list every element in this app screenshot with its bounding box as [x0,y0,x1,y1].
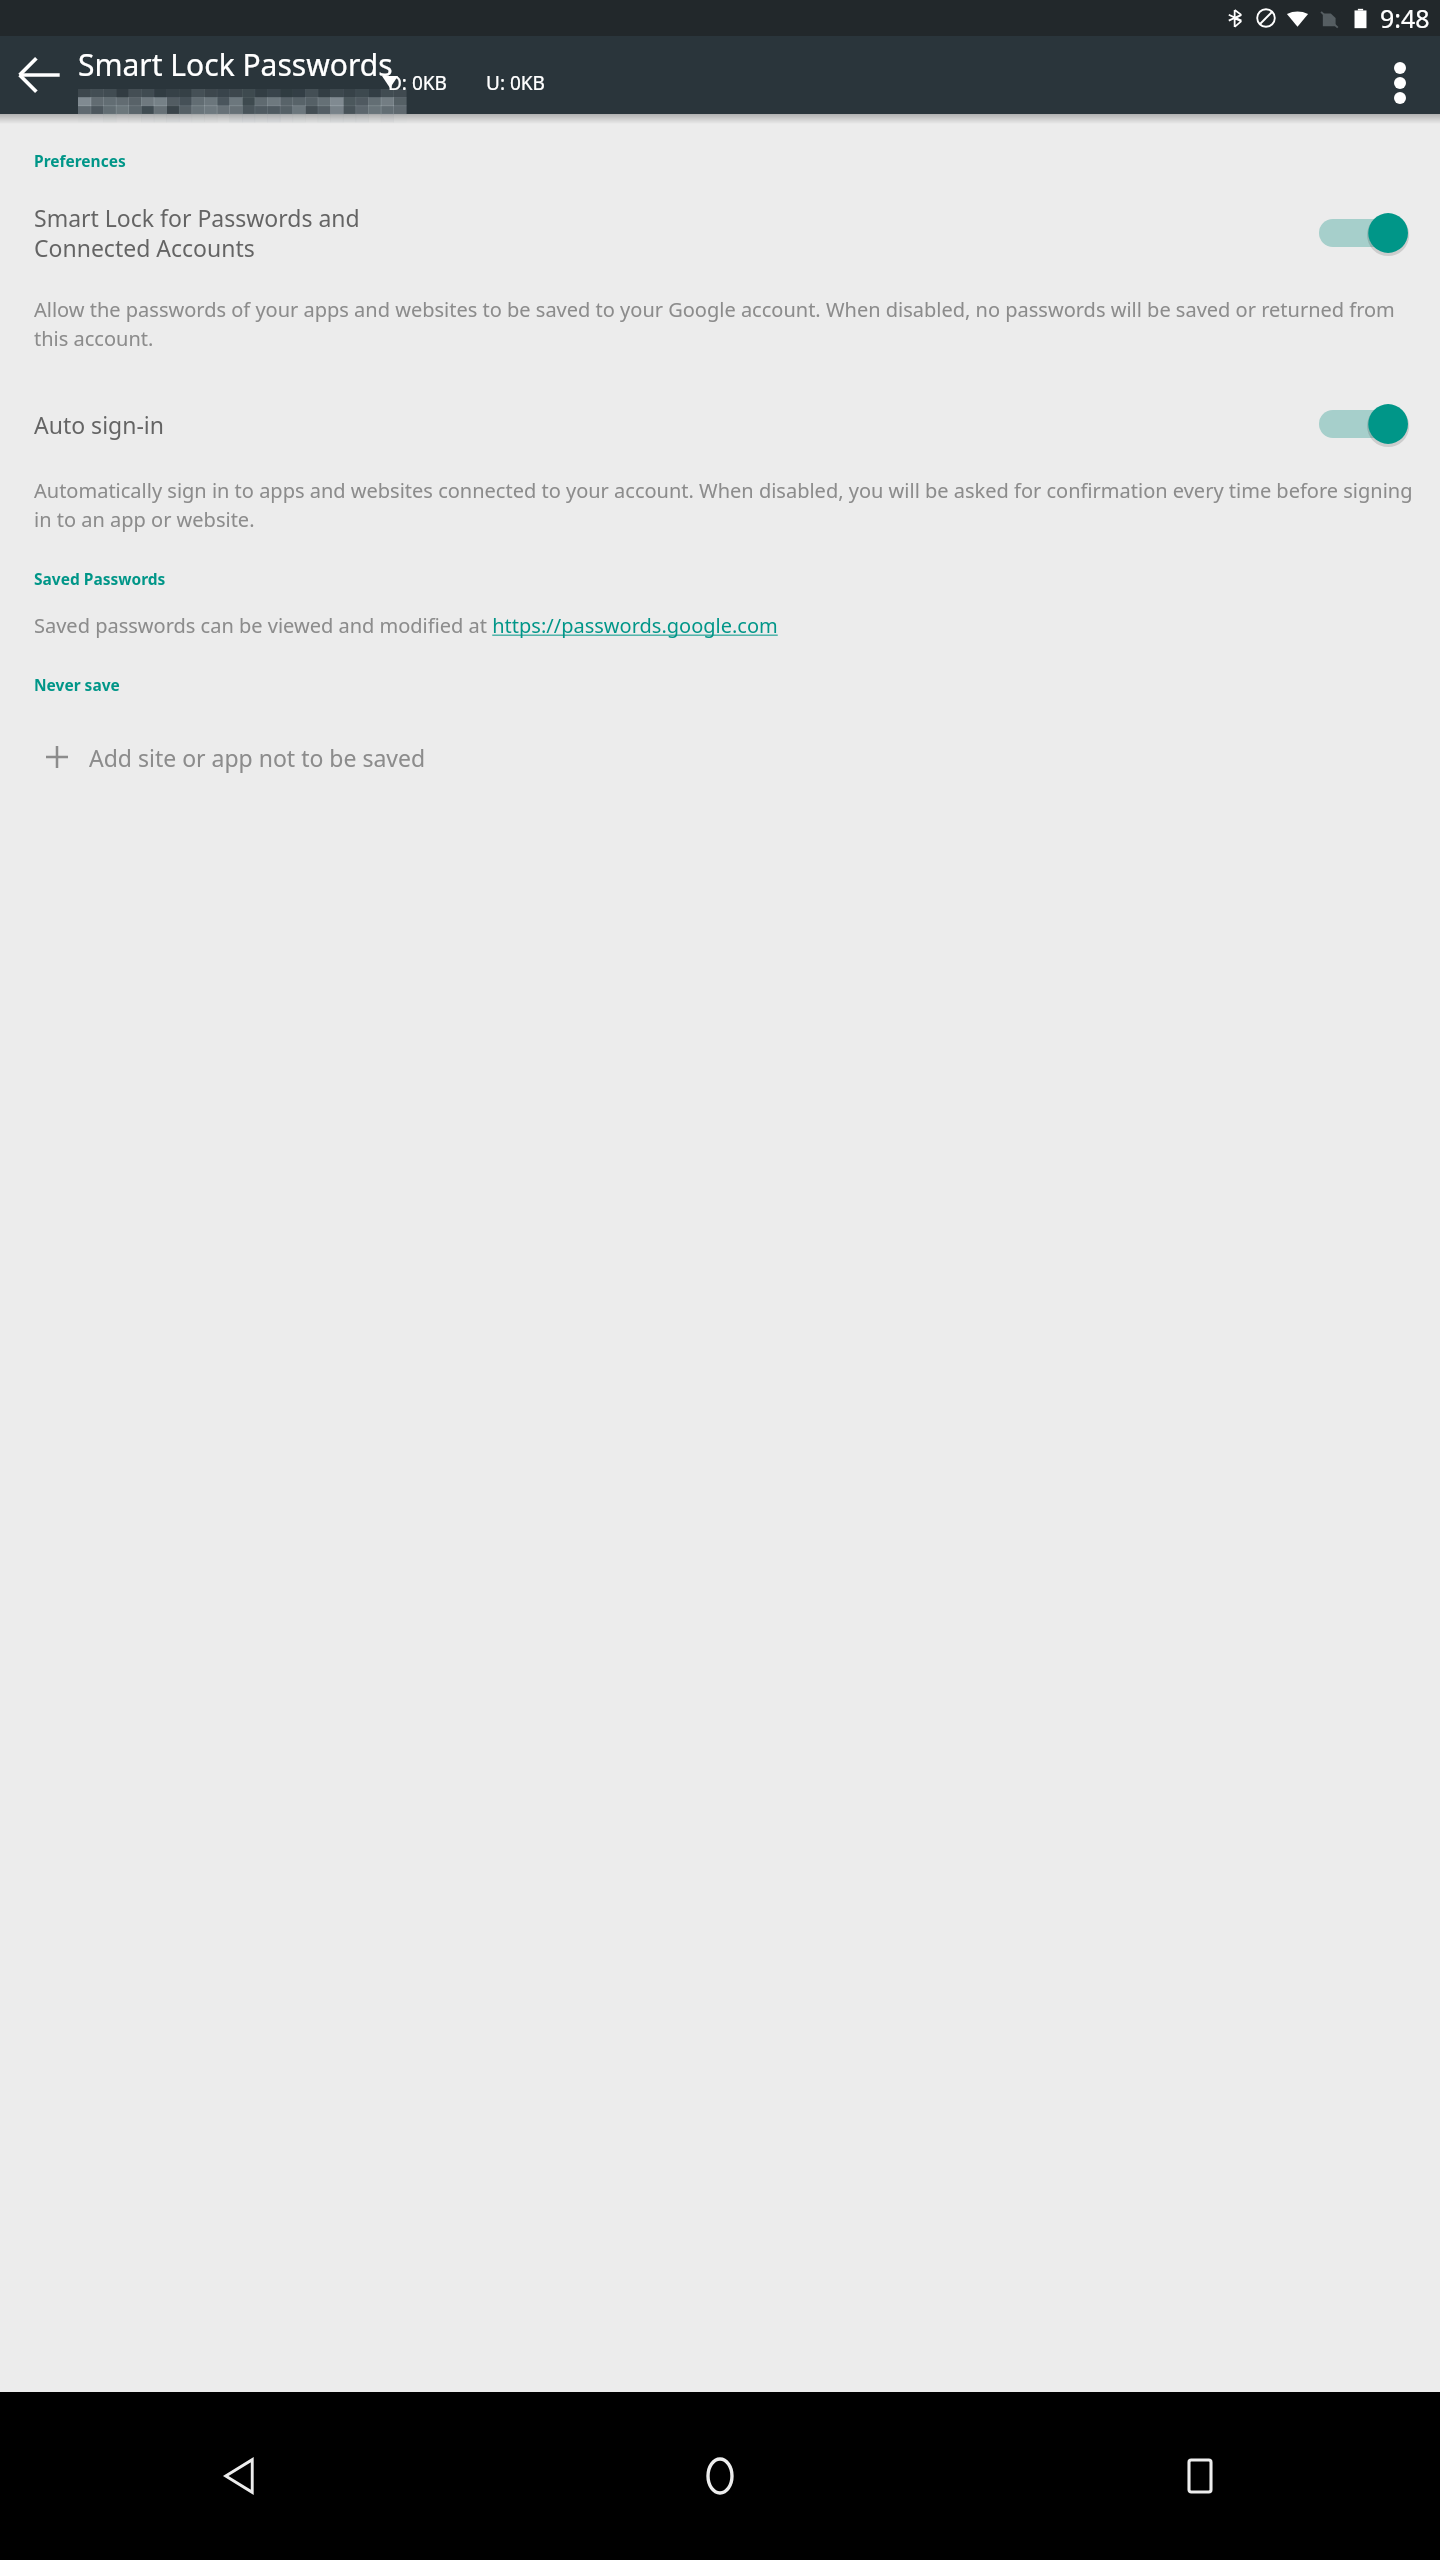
staticText: Add site or app not to be saved [89,742,426,773]
staticText: Automatically sign in to apps and websit… [34,477,1415,533]
staticText: U: 0KB [486,70,545,96]
button[interactable] [1319,205,1415,261]
button[interactable] [1319,396,1415,452]
button[interactable]: Home [480,2392,960,2560]
button[interactable]: Recent apps [960,2392,1440,2560]
button[interactable]: Add site or app not to be saved [0,723,1440,791]
staticText: Smart Lock for Passwords and Connected A… [34,202,1309,263]
button[interactable]: Saved passwords can be viewed and modifi… [34,612,778,639]
button[interactable]: Never save [34,674,120,695]
button[interactable]: More options [1364,47,1436,119]
button[interactable]: Choose account [382,76,398,88]
staticText: D: 0KB [388,70,447,96]
button[interactable]: Auto sign-in [0,396,1440,452]
button[interactable]: Navigate up [3,39,75,111]
button[interactable]: Smart Lock for Passwords and Connected A… [0,202,1440,263]
button[interactable]: Saved Passwords [34,568,166,589]
staticText: Auto sign-in [34,409,1309,440]
button[interactable]: Preferences [34,150,126,171]
staticText: Allow the passwords of your apps and web… [34,296,1412,352]
staticText: Smart Lock Passwords [78,44,393,85]
button[interactable]: Back [0,2392,480,2560]
staticText: 9:48 [1380,1,1430,35]
